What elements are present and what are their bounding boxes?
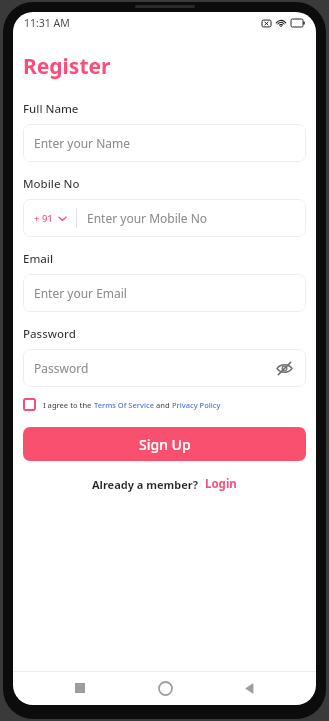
button[interactable]: Login — [205, 476, 237, 492]
staticText: Enter your Email — [34, 285, 127, 301]
staticText: Register — [23, 52, 111, 81]
button[interactable]: + 91 — [23, 199, 306, 237]
staticText: Password — [23, 326, 76, 342]
staticText: Login — [205, 476, 237, 492]
button[interactable]: Back — [232, 671, 266, 705]
staticText: Password — [34, 360, 273, 376]
staticText: I agree to the — [43, 400, 94, 410]
staticText: Already a member? — [92, 477, 198, 492]
staticText: + 91 — [34, 212, 53, 225]
button[interactable]: Home — [148, 671, 182, 705]
staticText: Privacy Policy — [172, 400, 221, 410]
button[interactable]: Sign Up — [23, 427, 306, 461]
staticText: Enter your Name — [34, 135, 130, 151]
button[interactable]: Enter your Name — [23, 124, 306, 162]
staticText: and — [154, 400, 172, 410]
staticText: Email — [23, 251, 54, 267]
staticText: Mobile No — [23, 176, 80, 192]
button[interactable]: Recents — [63, 671, 97, 705]
button[interactable]: Enter your Email — [23, 274, 306, 312]
button[interactable]: Password — [23, 349, 306, 387]
button[interactable]: I agree to the — [23, 398, 221, 411]
staticText: 11:31 AM — [24, 16, 70, 30]
button[interactable]: Show password — [273, 357, 295, 379]
button[interactable]: + 91 — [34, 212, 67, 225]
other: Select country code — [58, 214, 67, 223]
staticText: Enter your Mobile No — [87, 210, 208, 226]
staticText: Terms Of Service — [94, 400, 154, 410]
staticText: Full Name — [23, 101, 79, 117]
staticText: Sign Up — [139, 435, 191, 454]
